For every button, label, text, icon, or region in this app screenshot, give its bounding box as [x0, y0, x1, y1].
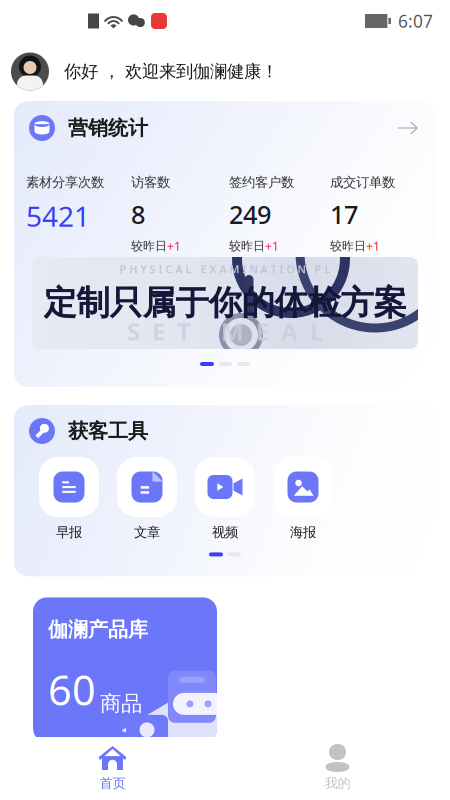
staticText: 定制只属于你的体检方案 — [43, 282, 406, 323]
button[interactable]: 首页 — [0, 737, 225, 800]
staticText: P H Y S I C A L E X A M I N A T I O N P … — [119, 262, 330, 276]
staticText: 访客数 — [131, 174, 170, 190]
staticText: 6:07 — [398, 9, 433, 32]
button[interactable]: 伽澜产品库 — [33, 597, 217, 742]
staticText: 签约客户数 — [229, 174, 294, 190]
button[interactable]: 查看营销统计 — [387, 107, 429, 149]
staticText: 较昨日 — [330, 239, 366, 253]
staticText: +1 — [366, 238, 380, 254]
staticText: 商品 — [100, 691, 142, 717]
staticText: 你好 ， 欢迎来到伽澜健康！ — [64, 61, 278, 82]
button[interactable]: 海报 — [264, 457, 342, 540]
staticText: 获客工具 — [68, 419, 148, 443]
staticText: 海报 — [290, 524, 316, 540]
staticText: 17 — [330, 197, 358, 231]
button[interactable]: 视频 — [186, 457, 264, 540]
staticText: 首页 — [99, 775, 125, 791]
staticText: 文章 — [134, 524, 160, 540]
staticText: 8 — [131, 197, 145, 231]
staticText: +1 — [167, 238, 181, 254]
staticText: 个产品 — [97, 739, 145, 759]
staticText: 素材分享次数 — [26, 174, 104, 190]
button[interactable]: 文章 — [108, 457, 186, 540]
staticText: 5 — [83, 734, 94, 759]
staticText: 我的 — [324, 775, 350, 791]
staticText: 视频 — [212, 524, 238, 540]
button[interactable]: 我的 — [225, 737, 450, 800]
staticText: 早报 — [56, 524, 82, 540]
staticText: 伽澜产品库 — [48, 617, 148, 642]
staticText: 较昨日 — [229, 239, 265, 253]
staticText: 较昨日 — [131, 239, 167, 253]
staticText: +1 — [265, 238, 279, 254]
staticText: 5421 — [26, 197, 90, 235]
staticText: 营销统计 — [68, 116, 148, 140]
staticText: 60 — [48, 662, 96, 717]
button[interactable]: 早报 — [30, 457, 108, 540]
staticText: S E T M E A L — [127, 315, 323, 347]
staticText: 249 — [229, 197, 271, 231]
staticText: 成交订单数 — [330, 174, 395, 190]
